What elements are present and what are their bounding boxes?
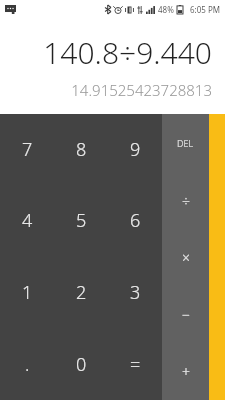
staticText: 7 (22, 137, 33, 162)
button[interactable]: 9 (108, 114, 162, 185)
button[interactable]: ÷ (162, 172, 209, 229)
staticText: 48% (158, 4, 174, 15)
staticText: 8 (76, 137, 87, 162)
button[interactable]: = (108, 328, 162, 400)
button[interactable]: DEL (162, 114, 209, 172)
staticText: × (182, 248, 190, 267)
staticText: = (130, 352, 141, 377)
button[interactable]: 0 (54, 328, 108, 400)
staticText: DEL (177, 137, 194, 149)
staticText: 1 (22, 280, 33, 305)
staticText: 6 (130, 208, 141, 233)
button[interactable]: 7 (0, 114, 54, 185)
staticText: 140.8÷9.440 (12, 32, 212, 73)
staticText: 6:05 PM (190, 4, 221, 15)
staticText: − (182, 305, 190, 324)
staticText: 14.91525423728813 (12, 80, 212, 100)
staticText: ÷ (182, 191, 190, 210)
button[interactable]: × (162, 229, 209, 286)
button[interactable]: . (0, 328, 54, 400)
staticText: 3 (130, 280, 141, 305)
staticText: 4 (22, 208, 33, 233)
button[interactable]: − (162, 286, 209, 343)
staticText: 2 (76, 280, 87, 305)
staticText: 9 (130, 137, 141, 162)
button[interactable]: 8 (54, 114, 108, 185)
button[interactable]: 3 (108, 256, 162, 328)
staticText: + (182, 362, 190, 381)
staticText: 5 (76, 208, 87, 233)
staticText: 0 (76, 352, 87, 377)
button[interactable]: 2 (54, 256, 108, 328)
button[interactable]: 6 (108, 185, 162, 256)
button[interactable]: 1 (0, 256, 54, 328)
button[interactable]: 4 (0, 185, 54, 256)
button[interactable]: 5 (54, 185, 108, 256)
staticText: . (25, 352, 30, 377)
button[interactable]: + (162, 343, 209, 400)
